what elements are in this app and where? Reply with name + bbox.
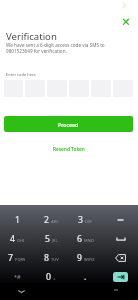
button[interactable]: 4 xyxy=(0,229,34,248)
button[interactable]: 0 xyxy=(34,267,68,286)
staticText: Enter code here xyxy=(6,72,36,77)
staticText: TUV xyxy=(51,257,59,262)
staticText: JKL xyxy=(52,238,58,243)
button[interactable]: 5 xyxy=(34,229,68,248)
staticText: PQRS xyxy=(15,257,26,262)
staticText: 5 xyxy=(45,233,50,245)
button[interactable]: . xyxy=(68,267,103,286)
button[interactable]: 9 xyxy=(68,248,103,267)
staticText: GHI xyxy=(17,238,25,243)
staticText: 3 xyxy=(78,214,83,226)
other: Dash xyxy=(118,217,123,223)
button[interactable]: Recents xyxy=(114,289,118,291)
button[interactable]: Dash xyxy=(103,211,138,229)
button[interactable]: Close xyxy=(120,15,132,27)
staticText: Resend Token xyxy=(53,146,85,153)
staticText: Verification xyxy=(6,30,57,43)
button[interactable]: *# xyxy=(0,267,34,286)
button[interactable]: 3 xyxy=(68,211,103,229)
other: Space xyxy=(116,236,126,241)
staticText: WXYZ xyxy=(84,257,95,262)
staticText: 4 xyxy=(10,233,15,245)
other: Backspace xyxy=(115,254,126,262)
staticText: Proceed xyxy=(58,121,79,128)
button[interactable]: Backspace xyxy=(103,248,138,267)
staticText: MNO xyxy=(84,238,94,243)
staticText: *# xyxy=(14,273,21,280)
button[interactable]: Resend Token xyxy=(4,143,133,156)
other: Enter xyxy=(113,272,128,282)
staticText: DEF xyxy=(85,219,93,224)
staticText: . xyxy=(84,271,87,283)
button[interactable]: Hide keyboard xyxy=(17,287,26,296)
staticText: We have sent a 6-digit access code via S… xyxy=(6,42,105,54)
button[interactable]: Space xyxy=(103,229,138,248)
staticText: 0 xyxy=(46,271,51,283)
staticText: 1 xyxy=(15,214,20,226)
button[interactable]: 1 xyxy=(0,211,34,229)
button[interactable]: 6 xyxy=(68,229,103,248)
staticText: + xyxy=(53,276,56,281)
staticText: 2 xyxy=(44,214,49,226)
button[interactable]: 7 xyxy=(0,248,34,267)
staticText: 7 xyxy=(8,252,13,264)
button[interactable]: Proceed xyxy=(4,116,133,132)
staticText: ABC xyxy=(51,219,59,224)
staticText: 9 xyxy=(77,252,82,264)
staticText: 8 xyxy=(44,252,49,264)
button[interactable]: 8 xyxy=(34,248,68,267)
button[interactable]: 2 xyxy=(34,211,68,229)
staticText: 6 xyxy=(77,233,82,245)
button[interactable]: Enter xyxy=(103,267,138,286)
